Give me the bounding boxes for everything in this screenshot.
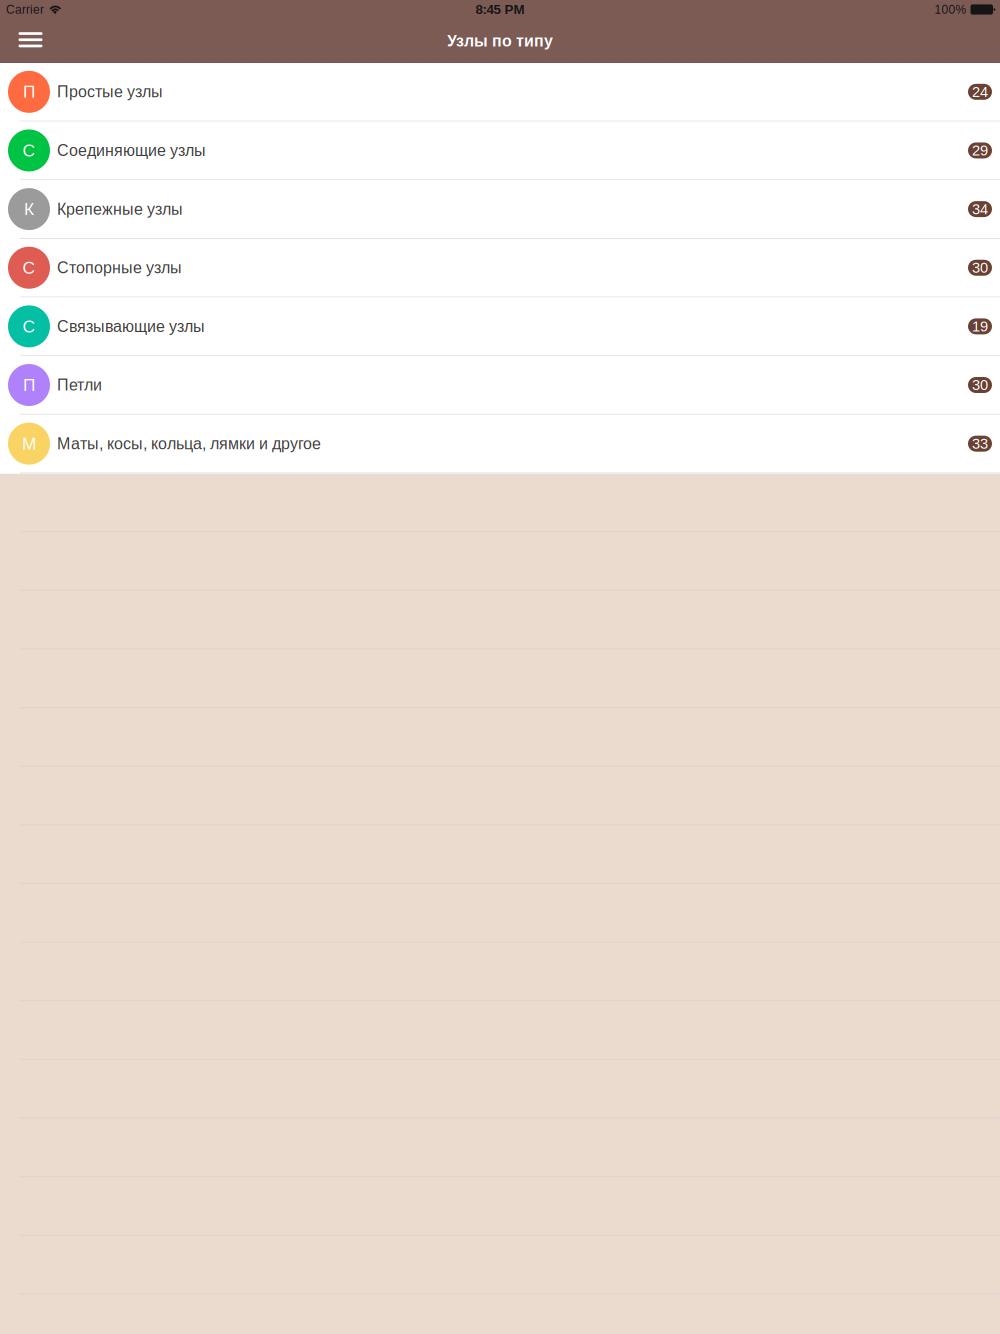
- staticText: Соединяющие узлы: [57, 141, 206, 159]
- button[interactable]: К: [0, 180, 1000, 239]
- button[interactable]: М: [0, 415, 1000, 473]
- staticText: 19: [972, 318, 988, 335]
- staticText: 30: [972, 377, 988, 393]
- staticText: М: [22, 434, 36, 453]
- staticText: Крепежные узлы: [57, 200, 183, 218]
- staticText: Связывающие узлы: [57, 317, 205, 335]
- staticText: Петли: [57, 376, 102, 394]
- staticText: 100%: [934, 3, 966, 16]
- button[interactable]: С: [0, 239, 1000, 297]
- staticText: К: [24, 199, 34, 219]
- staticText: 30: [972, 259, 988, 276]
- staticText: П: [23, 375, 35, 395]
- staticText: 8:45 PM: [475, 2, 524, 17]
- button[interactable]: П: [0, 63, 1000, 122]
- button[interactable]: С: [0, 122, 1000, 180]
- staticText: П: [23, 82, 35, 101]
- staticText: 33: [972, 435, 988, 452]
- staticText: С: [22, 141, 35, 160]
- button[interactable]: П: [0, 356, 1000, 415]
- staticText: Простые узлы: [57, 83, 163, 101]
- staticText: 24: [972, 84, 988, 100]
- staticText: С: [22, 317, 35, 336]
- staticText: Узлы по типу: [447, 32, 553, 50]
- staticText: Стопорные узлы: [57, 259, 182, 277]
- staticText: 34: [972, 201, 988, 217]
- staticText: С: [22, 258, 35, 277]
- staticText: Маты, косы, кольца, лямки и другое: [57, 435, 321, 453]
- button[interactable]: Menu: [9, 19, 52, 62]
- staticText: 29: [972, 142, 988, 159]
- button[interactable]: С: [0, 298, 1000, 356]
- staticText: Carrier: [6, 3, 44, 16]
